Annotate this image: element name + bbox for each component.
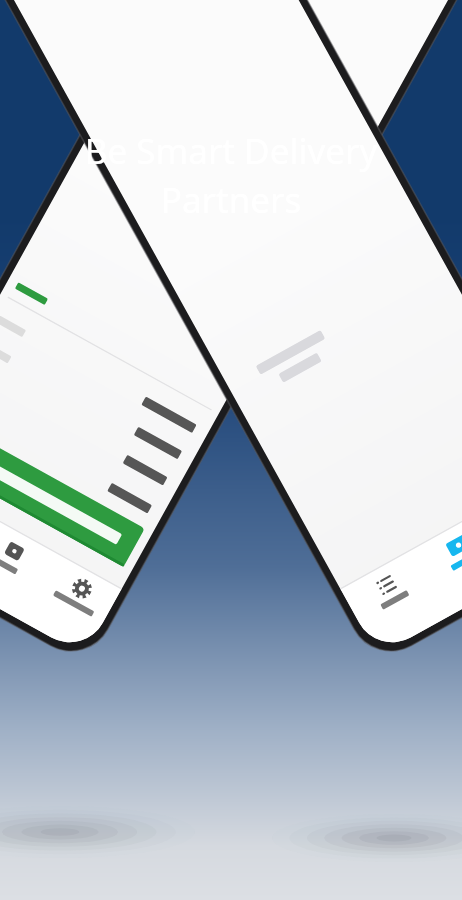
button[interactable]: Be Smart Delivery Partners — [28, 127, 434, 223]
staticText: Be Smart Delivery Partners — [28, 127, 434, 223]
